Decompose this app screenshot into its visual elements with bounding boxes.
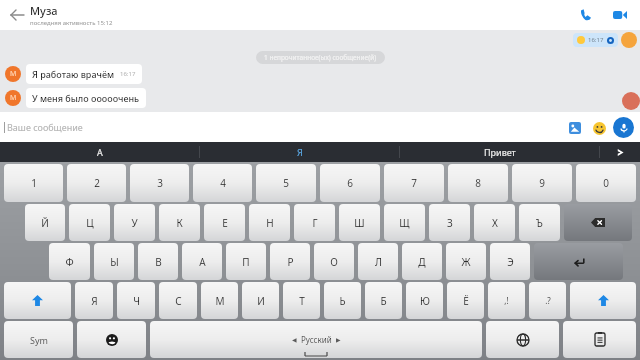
staticText: Я: [297, 146, 303, 158]
button[interactable]: О: [314, 243, 354, 280]
button[interactable]: .?: [529, 282, 566, 319]
button[interactable]: Г: [294, 204, 335, 241]
staticText: Ваше сообщение: [7, 121, 83, 133]
staticText: Муза: [30, 3, 58, 18]
staticText: .?: [545, 295, 551, 306]
button[interactable]: Ч: [117, 282, 155, 319]
button[interactable]: Й: [25, 204, 65, 241]
button[interactable]: И: [242, 282, 279, 319]
staticText: Ё: [463, 294, 469, 308]
button[interactable]: В: [138, 243, 178, 280]
button[interactable]: П: [226, 243, 266, 280]
button[interactable]: М: [201, 282, 238, 319]
button[interactable]: Ъ: [519, 204, 560, 241]
button[interactable]: Ь: [324, 282, 361, 319]
button[interactable]: Т: [283, 282, 320, 319]
button[interactable]: Д: [402, 243, 442, 280]
staticText: ▶: [336, 336, 341, 343]
staticText: М: [10, 93, 17, 103]
button[interactable]: Emoji: [589, 118, 609, 138]
button[interactable]: Ж: [446, 243, 486, 280]
button[interactable]: Привет: [400, 142, 599, 162]
button[interactable]: ,!: [488, 282, 525, 319]
staticText: Ъ: [536, 216, 543, 230]
staticText: 16:17: [588, 36, 604, 44]
button[interactable]: Я: [75, 282, 113, 319]
button[interactable]: Back: [4, 2, 30, 28]
staticText: Щ: [399, 216, 410, 230]
staticText: Д: [418, 255, 426, 269]
button[interactable]: 0: [576, 164, 636, 202]
staticText: Г: [312, 216, 318, 230]
staticText: Н: [266, 216, 274, 230]
button[interactable]: Change language: [486, 321, 559, 358]
button[interactable]: Я: [200, 142, 399, 162]
button[interactable]: Э: [490, 243, 530, 280]
button[interactable]: Clipboard: [563, 321, 636, 358]
button[interactable]: Б: [365, 282, 402, 319]
button[interactable]: Ы: [94, 243, 134, 280]
button[interactable]: Я работаю врачём: [32, 68, 136, 80]
button[interactable]: More suggestions: [600, 142, 640, 162]
staticText: З: [447, 216, 453, 230]
button[interactable]: Ф: [49, 243, 90, 280]
button[interactable]: Space: [150, 321, 482, 358]
button[interactable]: Л: [358, 243, 398, 280]
button[interactable]: Backspace: [564, 204, 632, 241]
staticText: В: [155, 255, 162, 269]
button[interactable]: А: [182, 243, 222, 280]
staticText: О: [330, 255, 338, 269]
staticText: ◀: [292, 336, 297, 343]
button[interactable]: Р: [270, 243, 310, 280]
button[interactable]: 3: [130, 164, 189, 202]
staticText: Т: [299, 294, 305, 308]
button[interactable]: Emoji keyboard: [77, 321, 146, 358]
staticText: Ю: [420, 294, 430, 308]
button[interactable]: 7: [384, 164, 444, 202]
button[interactable]: Н: [249, 204, 290, 241]
button[interactable]: Shift: [4, 282, 71, 319]
button[interactable]: 1 непрочитанное(ых) сообщение(й): [264, 53, 377, 62]
button[interactable]: 8: [448, 164, 508, 202]
button[interactable]: А: [0, 142, 199, 162]
button[interactable]: Enter: [534, 243, 623, 280]
button[interactable]: 2: [67, 164, 126, 202]
button[interactable]: Video call: [608, 3, 632, 27]
button[interactable]: Shift: [570, 282, 636, 319]
staticText: Sym: [30, 334, 48, 346]
button[interactable]: Voice message: [613, 117, 634, 138]
button[interactable]: Щ: [384, 204, 425, 241]
button[interactable]: 4: [193, 164, 252, 202]
button[interactable]: Е: [204, 204, 245, 241]
button[interactable]: 5: [256, 164, 316, 202]
button[interactable]: Attach image: [565, 118, 585, 138]
staticText: 0: [603, 176, 609, 190]
staticText: Ц: [86, 216, 94, 230]
staticText: 16:17: [120, 70, 136, 78]
staticText: П: [242, 255, 250, 269]
button[interactable]: Х: [474, 204, 515, 241]
staticText: С: [175, 294, 182, 308]
button[interactable]: Ё: [447, 282, 484, 319]
staticText: Й: [41, 216, 49, 230]
staticText: последняя активность 15:12: [30, 19, 113, 27]
button[interactable]: Ю: [406, 282, 443, 319]
button[interactable]: К: [159, 204, 200, 241]
staticText: У меня было ооооочень: [32, 92, 140, 104]
button[interactable]: У меня было ооооочень: [32, 92, 140, 104]
staticText: Привет: [484, 146, 516, 158]
button[interactable]: 6: [320, 164, 380, 202]
button[interactable]: З: [429, 204, 470, 241]
staticText: М: [10, 69, 17, 79]
button[interactable]: Sym: [4, 321, 73, 358]
button[interactable]: 9: [512, 164, 572, 202]
staticText: 4: [220, 176, 226, 190]
button[interactable]: 1: [4, 164, 63, 202]
button[interactable]: С: [159, 282, 197, 319]
button[interactable]: Call: [574, 3, 598, 27]
button[interactable]: У: [114, 204, 155, 241]
button[interactable]: Ц: [69, 204, 110, 241]
staticText: Ш: [354, 216, 365, 230]
button[interactable]: Ш: [339, 204, 380, 241]
button[interactable]: 16:17: [577, 36, 614, 44]
